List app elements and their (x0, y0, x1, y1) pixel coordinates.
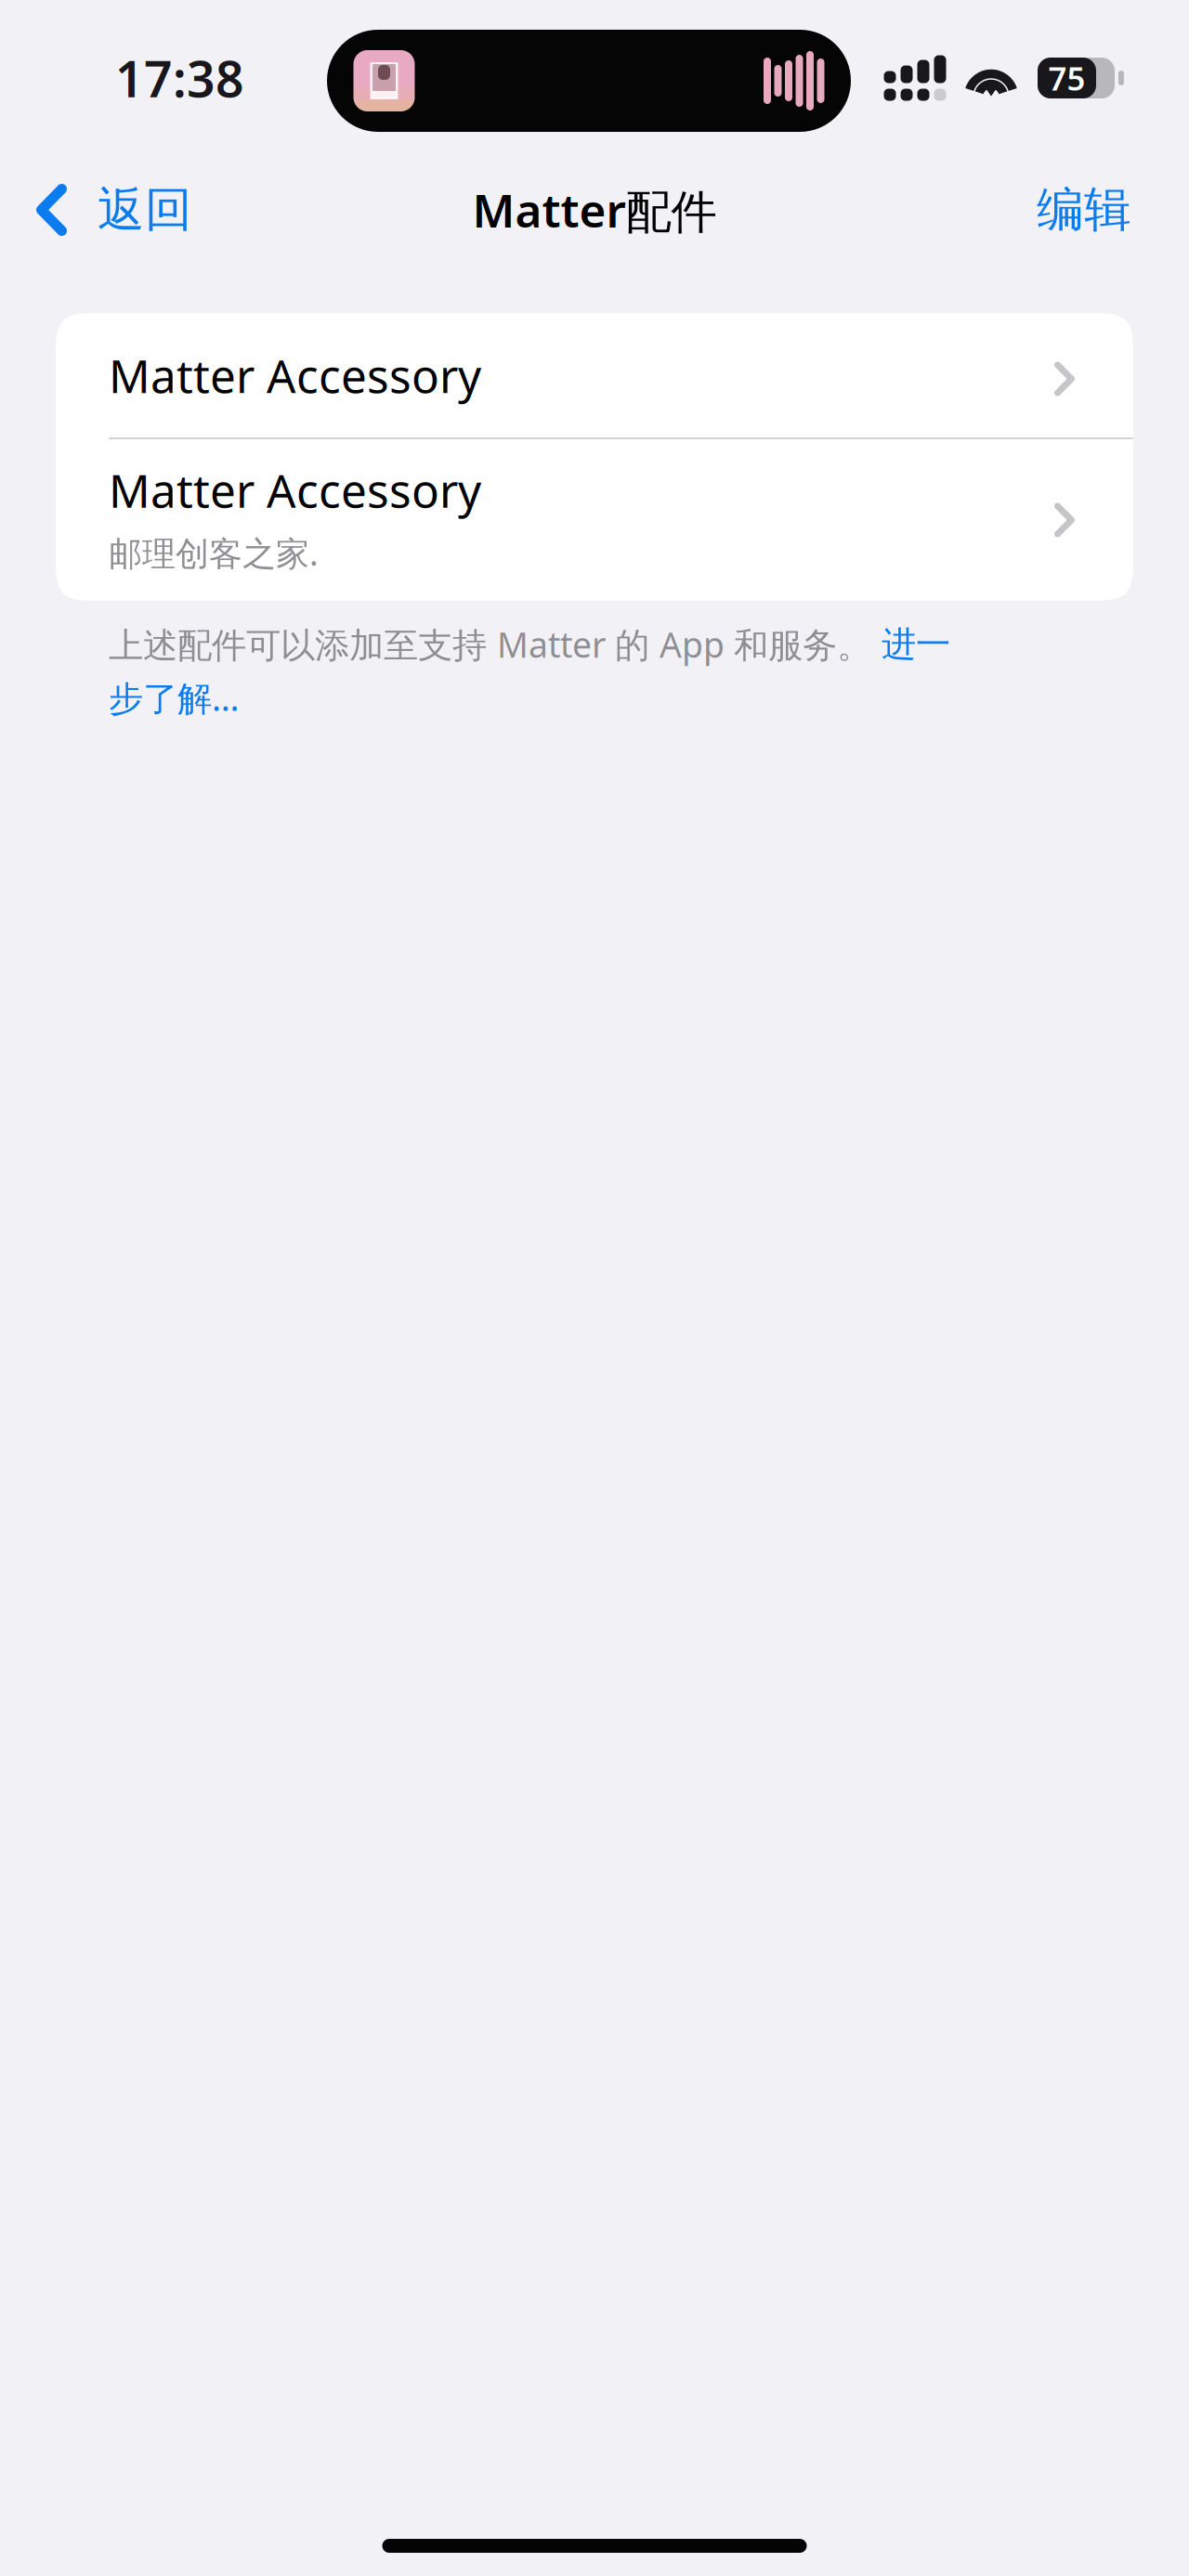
staticText: 进一 (882, 623, 950, 666)
button[interactable]: Matter Accessory (56, 313, 1133, 437)
button[interactable]: Matter Accessory (56, 439, 1133, 601)
button[interactable]: 返回 (0, 160, 215, 260)
button[interactable]: 编辑 (1009, 160, 1189, 260)
staticText: Matter Accessory (109, 459, 481, 520)
staticText: 上述配件可以添加至支持 Matter 的 App 和服务。 (109, 621, 882, 667)
button[interactable]: 进一步了解… (109, 621, 1133, 721)
staticText: Matter Accessory (109, 345, 481, 406)
staticText: Matter配件 (472, 179, 717, 240)
staticText: 17:38 (115, 45, 244, 111)
staticText: 返回 (98, 181, 192, 239)
staticText: 步了解… (109, 675, 240, 721)
staticText: 邮理创客之家. (109, 531, 319, 575)
staticText: 75 (1048, 57, 1085, 99)
staticText: 编辑 (1037, 181, 1131, 239)
